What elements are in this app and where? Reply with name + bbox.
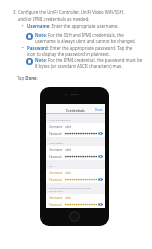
staticText: IPMI (IPMI/BMC) PASSWORD MUST BE bbox=[49, 187, 91, 190]
staticText: Username bbox=[49, 171, 63, 175]
button[interactable]: Username bbox=[46, 123, 105, 130]
staticText: Tap Done. bbox=[17, 75, 38, 81]
staticText: SSH bbox=[49, 165, 54, 168]
staticText: Password bbox=[49, 132, 62, 136]
button[interactable]: Show password bbox=[98, 177, 103, 182]
staticText: Password bbox=[49, 178, 62, 182]
button[interactable]: Password bbox=[46, 130, 105, 137]
staticText: • bbox=[22, 45, 24, 51]
staticText: Username: Enter the appropriate username… bbox=[27, 23, 119, 29]
staticText: Username bbox=[49, 148, 63, 152]
staticText: ubnt bbox=[65, 196, 72, 200]
staticText: Configure the UniFi Controller, UniFi Vi… bbox=[18, 9, 125, 15]
button[interactable]: Show password bbox=[98, 154, 103, 159]
staticText: Password: Enter the appropriate password… bbox=[27, 45, 134, 51]
button[interactable]: Password bbox=[46, 176, 105, 183]
staticText: Credentials bbox=[66, 108, 85, 113]
staticText: Username bbox=[49, 125, 63, 129]
staticText: 8 BYTES MAX bbox=[49, 190, 64, 193]
staticText: Done bbox=[95, 108, 103, 112]
button[interactable]: Username bbox=[46, 169, 105, 176]
staticText: Username bbox=[49, 196, 63, 200]
button[interactable]: Password bbox=[46, 201, 105, 208]
button[interactable]: Password bbox=[46, 153, 105, 160]
button[interactable]: Show password bbox=[98, 202, 103, 207]
staticText: Note: For the SSH and IPMI credentials, … bbox=[35, 32, 124, 38]
staticText: ubnt bbox=[65, 125, 72, 129]
staticText: • bbox=[22, 23, 24, 29]
button[interactable]: Username bbox=[46, 146, 105, 153]
staticText: 8 bytes (or standard ASCII characters) m… bbox=[35, 63, 123, 69]
staticText: icon to display the password in plaintex… bbox=[27, 51, 111, 57]
staticText: ubnt bbox=[65, 148, 72, 152]
staticText: 3. bbox=[13, 9, 17, 15]
staticText: username is always ubnt and cannot be ch… bbox=[35, 38, 136, 44]
staticText: Password bbox=[49, 155, 62, 159]
staticText: UNIFI VIDEO bbox=[49, 142, 63, 145]
staticText: Password bbox=[49, 203, 62, 207]
button[interactable]: Username bbox=[46, 194, 105, 201]
staticText: ubnt bbox=[65, 171, 72, 175]
staticText: Note: For the IPMI credential, the passw… bbox=[35, 57, 143, 63]
staticText: and/or IPMI credentials as needed: bbox=[18, 16, 90, 22]
staticText: UNIFI CONTROLLER bbox=[49, 119, 71, 122]
button[interactable]: Show password bbox=[98, 131, 103, 136]
button[interactable]: Done bbox=[95, 108, 103, 112]
